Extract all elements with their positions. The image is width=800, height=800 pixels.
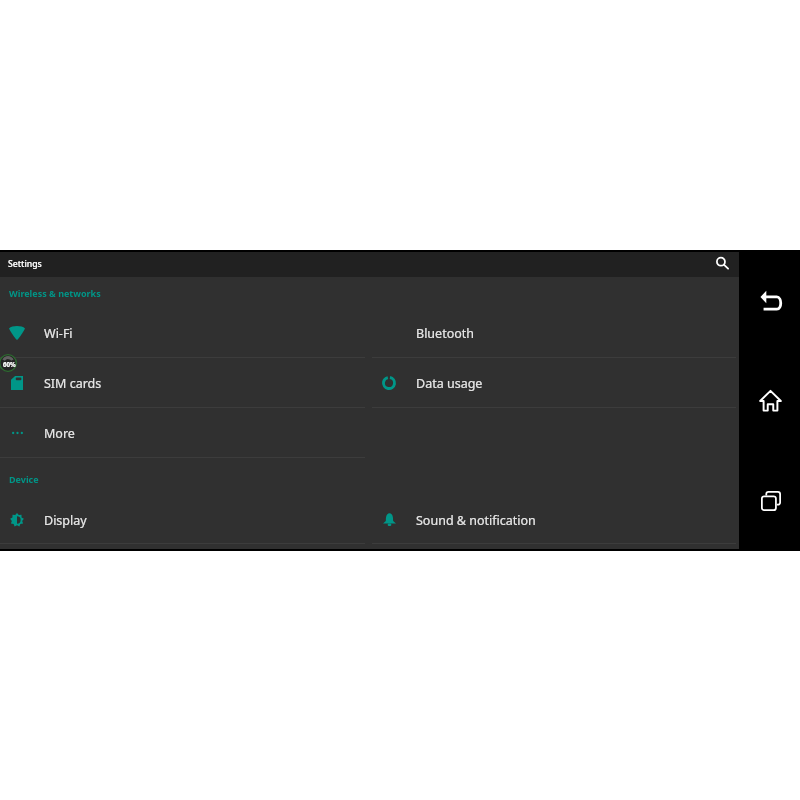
button[interactable]: Sound & notification — [372, 496, 736, 544]
button[interactable]: Back — [751, 281, 789, 319]
staticText: Wireless & networks — [9, 287, 101, 299]
button[interactable]: Wi-Fi — [0, 308, 365, 358]
staticText: Settings — [8, 258, 42, 270]
button[interactable]: Data usage — [372, 358, 736, 408]
staticText: Sound & notification — [416, 512, 536, 529]
button[interactable]: Home — [751, 381, 789, 419]
staticText: SIM cards — [44, 375, 102, 392]
button[interactable]: Display — [0, 496, 365, 544]
button[interactable]: Search — [712, 253, 733, 274]
staticText: Display — [44, 512, 87, 529]
staticText: Wi-Fi — [44, 325, 73, 342]
staticText: Device — [9, 473, 39, 485]
button[interactable]: SIM cards — [0, 358, 365, 408]
button[interactable]: More — [0, 408, 365, 458]
staticText: More — [44, 425, 75, 442]
staticText: 60% — [3, 360, 16, 368]
button[interactable]: Bluetooth — [372, 308, 736, 358]
staticText: Bluetooth — [416, 325, 475, 342]
staticText: Data usage — [416, 375, 483, 392]
button[interactable]: Recents — [752, 482, 790, 520]
